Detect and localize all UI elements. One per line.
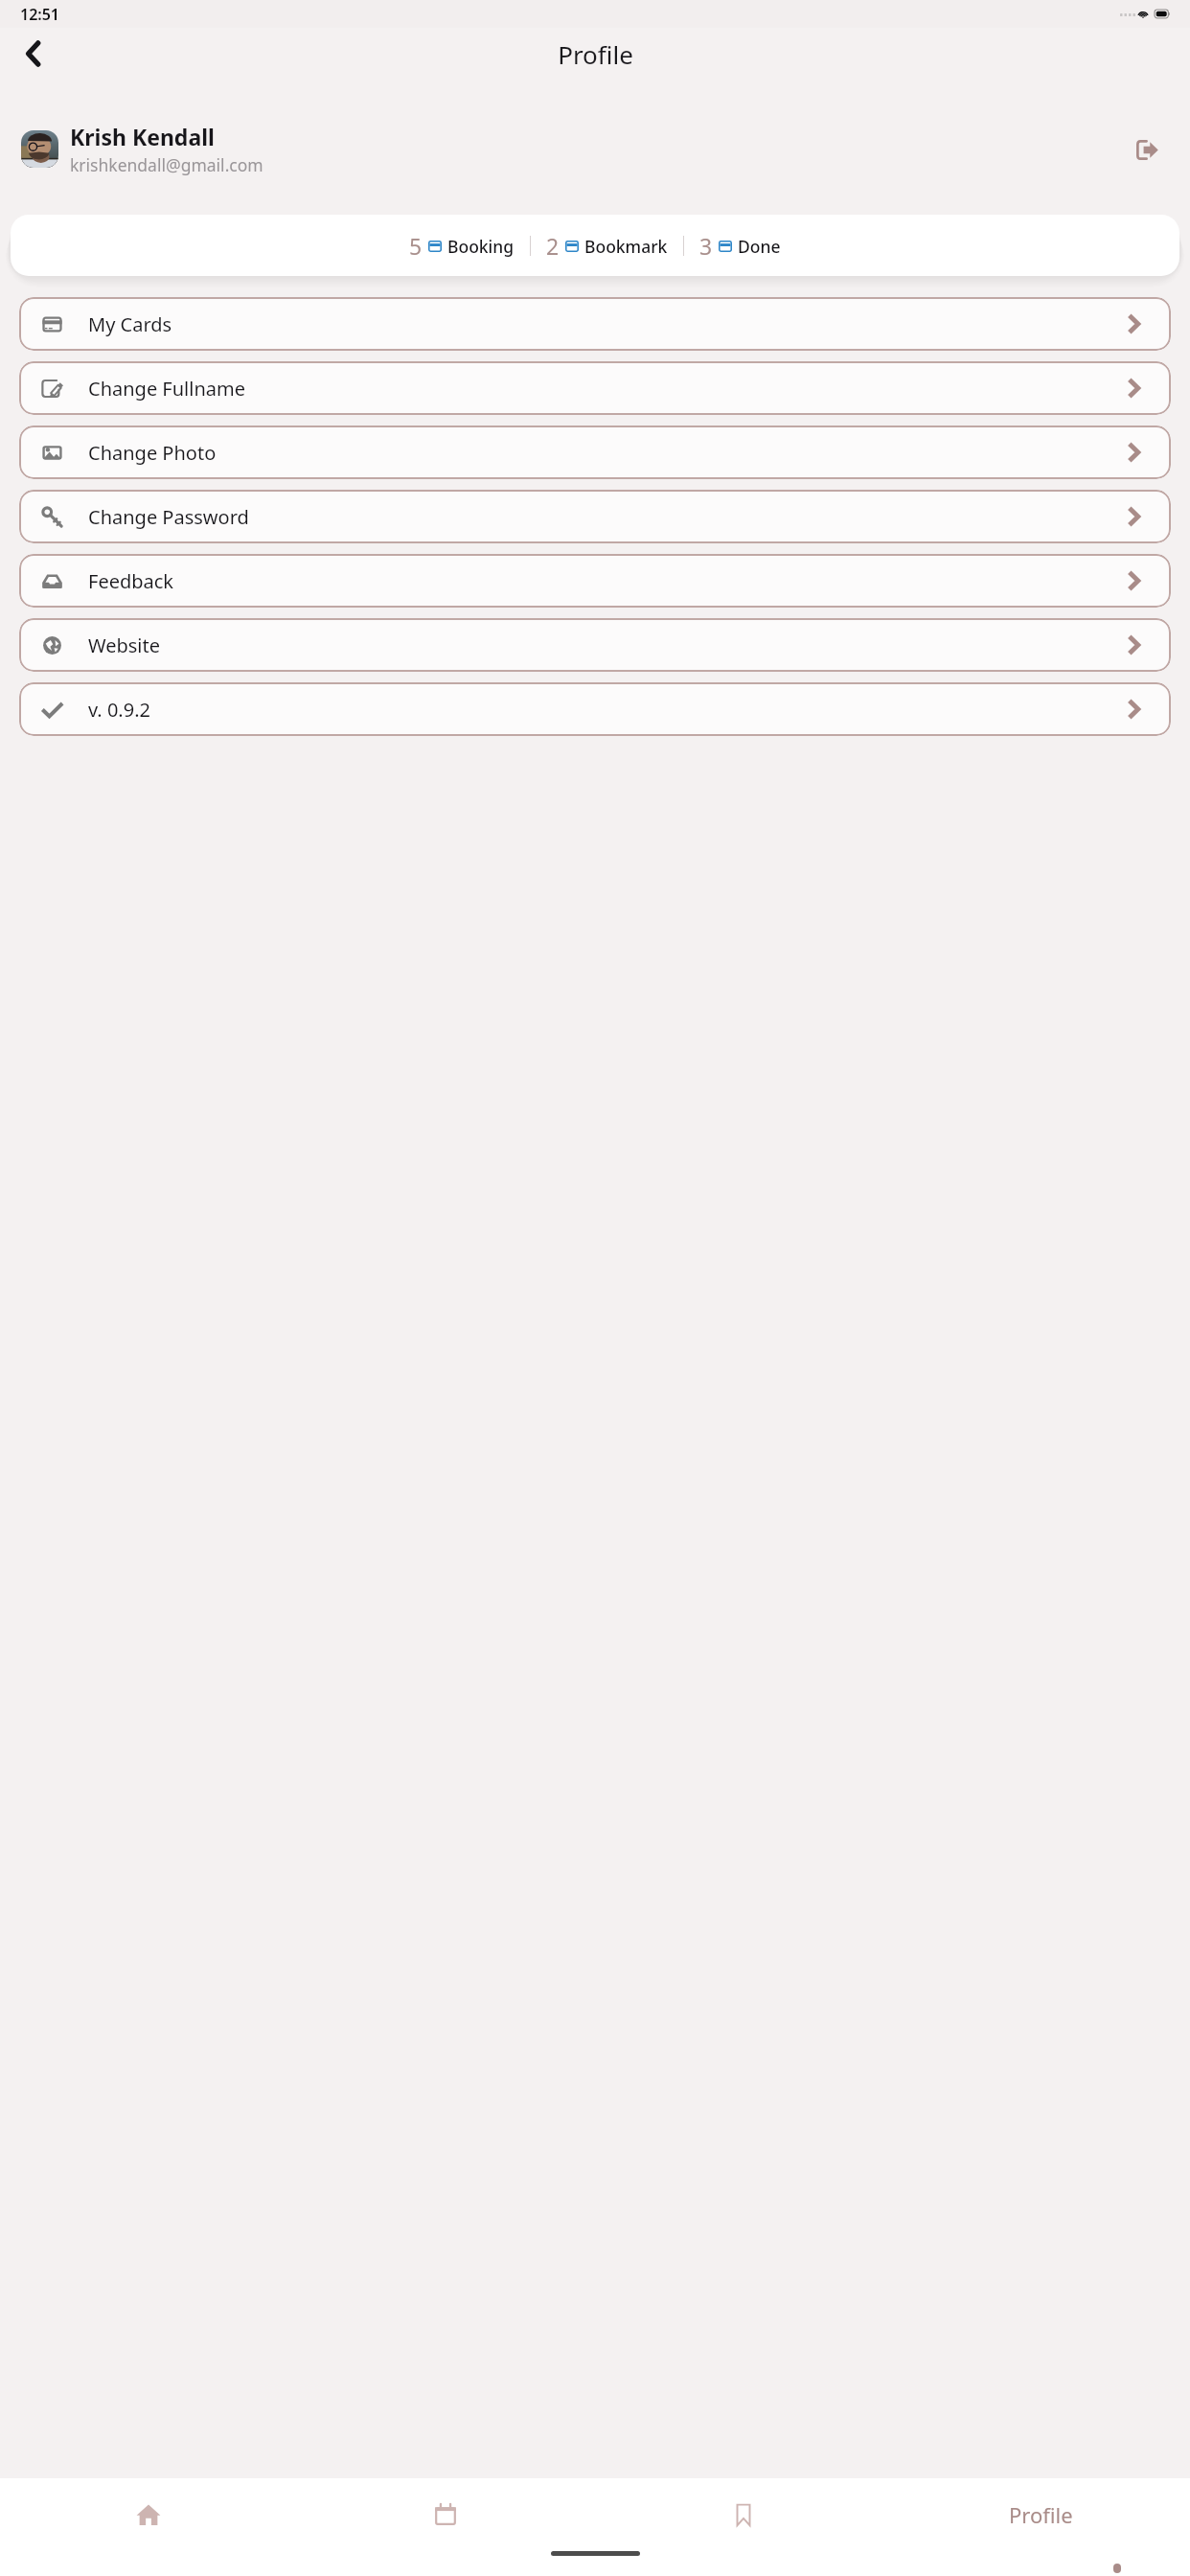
staticText: 2 xyxy=(546,231,560,261)
button[interactable]: 2 xyxy=(541,226,673,265)
button[interactable]: 5 xyxy=(404,226,519,265)
button[interactable]: Profile xyxy=(892,2478,1190,2551)
staticText: Booking xyxy=(447,235,515,258)
button[interactable]: Change Fullname xyxy=(19,361,1171,415)
staticText: Change Fullname xyxy=(88,376,245,402)
button[interactable]: Change Password xyxy=(19,490,1171,543)
button[interactable]: Feedback xyxy=(19,554,1171,608)
staticText: Done xyxy=(738,235,781,258)
staticText: 5 xyxy=(409,231,423,261)
staticText: Profile xyxy=(558,37,633,71)
button[interactable]: Back xyxy=(7,28,58,80)
button[interactable]: Home xyxy=(0,2478,297,2551)
button[interactable] xyxy=(21,130,58,168)
staticText: krishkendall@gmail.com xyxy=(70,153,263,176)
staticText: Bookmark xyxy=(584,235,668,258)
button[interactable]: Change Photo xyxy=(19,425,1171,479)
button[interactable]: Bookmarks xyxy=(594,2478,892,2551)
staticText: 3 xyxy=(699,231,713,261)
button[interactable]: Website xyxy=(19,618,1171,672)
button[interactable]: Bookings xyxy=(297,2478,594,2551)
staticText: Change Password xyxy=(88,504,249,530)
staticText: Krish Kendall xyxy=(70,122,215,151)
staticText: Website xyxy=(88,632,161,658)
staticText: Profile xyxy=(1009,2500,1073,2529)
staticText: Change Photo xyxy=(88,440,217,466)
staticText: My Cards xyxy=(88,311,172,337)
staticText: Feedback xyxy=(88,568,174,594)
staticText: v. 0.9.2 xyxy=(88,697,150,723)
button[interactable]: Log out xyxy=(1125,127,1169,172)
button[interactable]: v. 0.9.2 xyxy=(19,682,1171,736)
button[interactable]: 3 xyxy=(695,226,786,265)
staticText: 12:51 xyxy=(20,4,60,25)
button[interactable]: My Cards xyxy=(19,297,1171,351)
